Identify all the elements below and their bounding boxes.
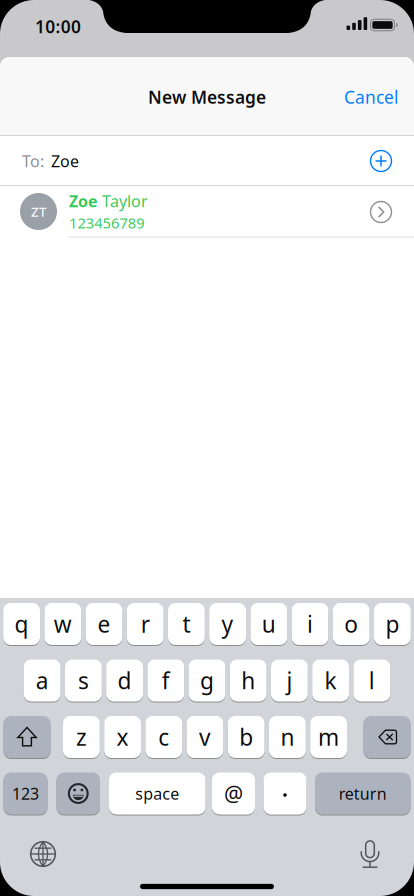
staticText: t	[182, 609, 190, 639]
button[interactable]: k	[312, 659, 349, 701]
staticText: r	[141, 609, 150, 639]
staticText: h	[241, 665, 255, 695]
staticText: New Message	[148, 85, 266, 108]
button[interactable]: r	[127, 603, 164, 645]
button[interactable]: space	[109, 772, 205, 814]
staticText: ZT	[31, 203, 46, 220]
button[interactable]: n	[269, 716, 306, 758]
button[interactable]: Dictate	[351, 833, 391, 873]
button[interactable]: q	[3, 603, 40, 645]
button[interactable]: o	[333, 603, 370, 645]
button[interactable]: Add Contact	[367, 147, 395, 175]
button[interactable]: Emoji	[56, 772, 100, 814]
button[interactable]: @	[212, 772, 255, 814]
button[interactable]: p	[374, 603, 411, 645]
staticText: b	[239, 722, 253, 752]
button[interactable]: g	[189, 659, 225, 701]
button[interactable]: ZT	[20, 186, 394, 236]
button[interactable]: y	[209, 603, 246, 645]
staticText: w	[54, 609, 72, 639]
staticText: u	[262, 609, 276, 639]
staticText: p	[385, 609, 399, 639]
staticText: g	[200, 665, 214, 695]
button[interactable]: x	[104, 716, 141, 758]
staticText: 123456789	[69, 213, 144, 233]
staticText: Cancel	[344, 85, 398, 108]
staticText: e	[97, 609, 110, 639]
staticText: v	[199, 722, 211, 752]
staticText: d	[118, 665, 132, 695]
button[interactable]: a	[24, 659, 61, 701]
button[interactable]: b	[228, 716, 265, 758]
staticText: 123	[12, 783, 39, 804]
button[interactable]: t	[168, 603, 205, 645]
button[interactable]: d	[106, 659, 143, 701]
button[interactable]: f	[147, 659, 184, 701]
button[interactable]: h	[230, 659, 267, 701]
staticText: o	[344, 609, 358, 639]
button[interactable]: Contact Info	[367, 198, 395, 226]
staticText: a	[36, 665, 49, 695]
button[interactable]: z	[63, 716, 100, 758]
button[interactable]: v	[187, 716, 223, 758]
staticText: Zoe	[51, 150, 79, 172]
button[interactable]: u	[250, 603, 287, 645]
staticText: y	[222, 609, 234, 639]
button[interactable]: m	[310, 716, 347, 758]
button[interactable]: j	[271, 659, 308, 701]
button[interactable]: l	[353, 659, 390, 701]
staticText: l	[369, 665, 375, 695]
staticText: z	[76, 722, 87, 752]
staticText: To:	[22, 150, 44, 172]
staticText: space	[135, 783, 179, 804]
staticText: return	[339, 783, 387, 804]
button[interactable]: Cancel	[344, 85, 398, 108]
staticText: n	[280, 722, 294, 752]
staticText: x	[117, 722, 129, 752]
staticText: i	[307, 609, 313, 639]
button[interactable]: Shift	[3, 716, 50, 758]
staticText: 10:00	[35, 15, 81, 38]
button[interactable]: period	[263, 772, 306, 814]
staticText: @	[224, 779, 243, 808]
staticText: m	[318, 722, 339, 752]
button[interactable]: Next Keyboard	[23, 834, 63, 874]
button[interactable]: 123	[3, 772, 47, 814]
button[interactable]: return	[315, 772, 410, 814]
staticText: c	[158, 722, 169, 752]
button[interactable]: Delete	[363, 716, 410, 758]
staticText: Zoe Taylor	[69, 190, 148, 212]
staticText: f	[162, 665, 170, 695]
button[interactable]: e	[86, 603, 122, 645]
staticText: j	[286, 665, 292, 695]
button[interactable]: c	[145, 716, 182, 758]
staticText: s	[78, 665, 89, 695]
button[interactable]: w	[44, 603, 81, 645]
staticText: k	[325, 665, 337, 695]
staticText: q	[15, 609, 29, 639]
button[interactable]: i	[292, 603, 328, 645]
button[interactable]: s	[65, 659, 102, 701]
